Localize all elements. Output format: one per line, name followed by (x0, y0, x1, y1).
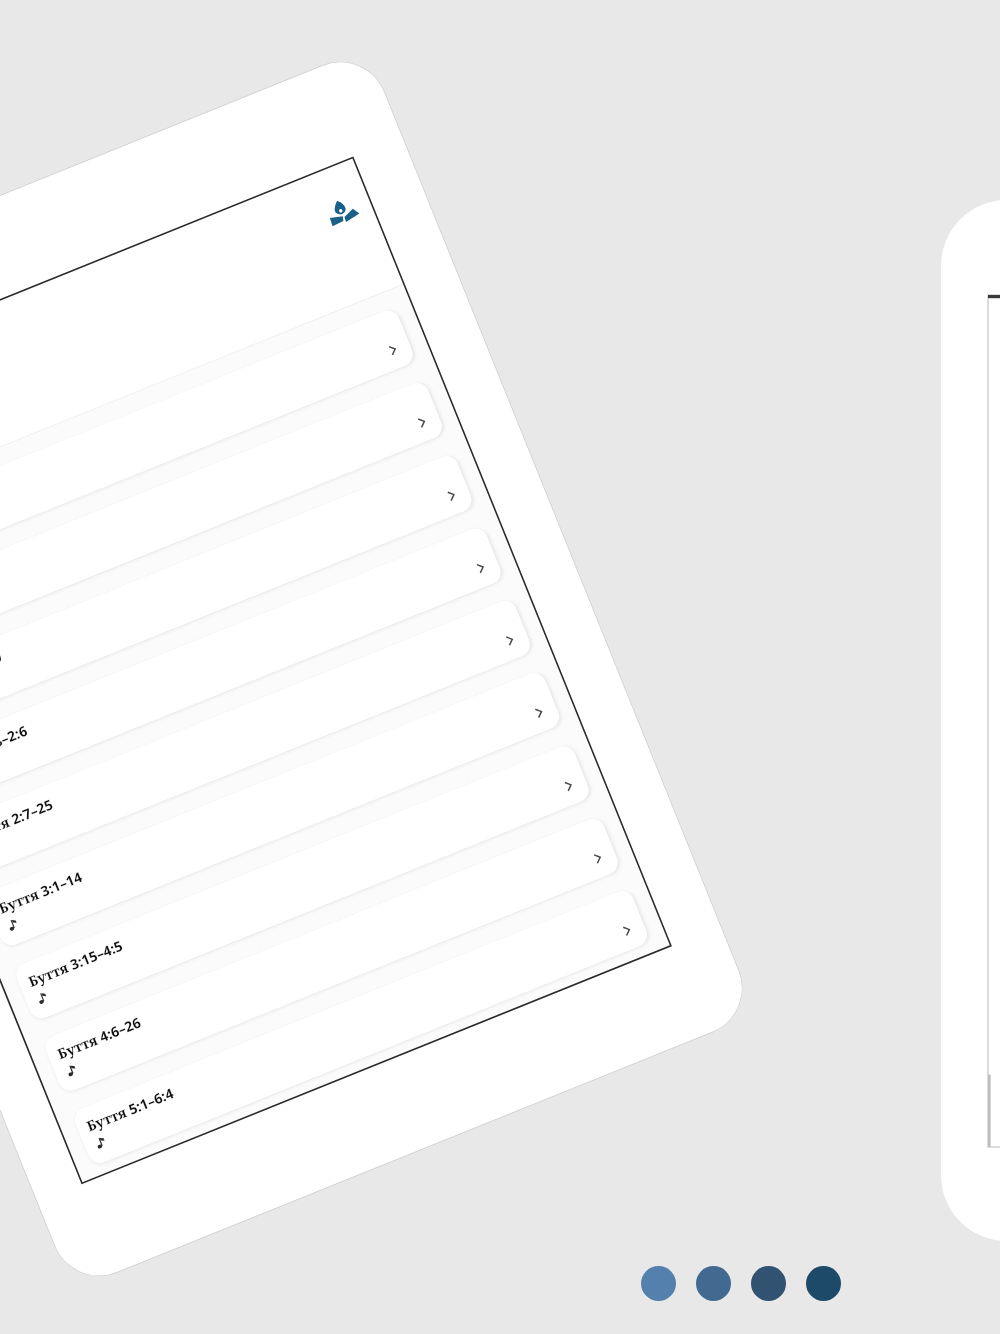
staticText: Буття 3:15–4:5 (25, 935, 126, 991)
staticText: Буття 3:1–14 (0, 867, 85, 918)
button[interactable]: Open reader (324, 192, 361, 228)
staticText: Буття 1:8–2:6 (0, 720, 31, 773)
button[interactable]: Буття 2:7–25 (0, 597, 534, 877)
button[interactable]: Буття 1:1–5 (0, 307, 417, 586)
button[interactable]: Page indicator (696, 1266, 731, 1301)
button[interactable]: Буття 1:14–19 (0, 452, 476, 732)
button[interactable]: Буття 1:8–2:6 (0, 524, 505, 804)
staticText: Буття 4:6–26 (54, 1012, 144, 1063)
button[interactable]: Буття 1:6–13 (0, 379, 446, 659)
button[interactable]: Page indicator (751, 1266, 786, 1301)
button[interactable]: Буття 3:15–4:5 (12, 742, 593, 1022)
button[interactable]: Page indicator (641, 1266, 676, 1301)
button[interactable]: Буття 5:1–6:4 (71, 887, 651, 1167)
staticText: Буття 5:1–6:4 (84, 1083, 177, 1135)
staticText: Буття 1:14–19 (0, 647, 5, 701)
button[interactable]: Буття 3:1–14 (0, 669, 563, 949)
button[interactable]: Буття 4:6–26 (41, 815, 622, 1095)
button[interactable]: Page indicator (806, 1266, 841, 1301)
staticText: Буття 2:7–25 (0, 794, 56, 845)
